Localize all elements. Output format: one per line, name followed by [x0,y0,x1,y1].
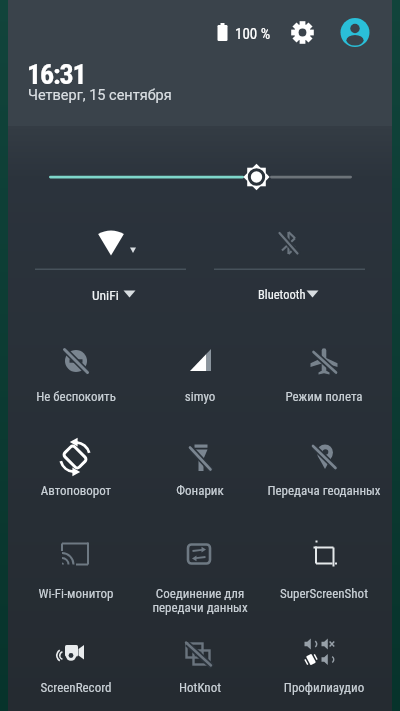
staticText: Профилиаудио [259,680,389,695]
staticText: Фонарик [135,483,265,498]
button[interactable] [262,329,386,421]
staticText: Передача геоданных [259,483,389,498]
button[interactable] [14,425,138,517]
button[interactable] [14,620,138,711]
staticText: HotKnot [135,680,265,695]
staticText: Режим полета [259,389,389,404]
staticText: Соединение для передачи данных [135,586,265,616]
button[interactable] [338,16,372,50]
button[interactable] [41,160,361,194]
button[interactable] [14,329,138,421]
button[interactable] [138,523,262,615]
button[interactable] [32,216,190,308]
staticText: UniFi [92,287,119,303]
button[interactable] [138,621,262,711]
button[interactable] [262,524,386,616]
staticText: Bluetooth [258,287,306,302]
button[interactable] [290,18,316,46]
staticText: 16:31 [27,58,86,91]
button[interactable] [14,523,138,615]
button[interactable] [262,425,386,517]
button[interactable] [138,328,262,420]
button[interactable] [210,216,368,308]
staticText: Не беспокоить [11,389,141,404]
staticText: Wi-Fi-монитор [11,586,141,601]
button[interactable] [262,620,386,711]
staticText: SuperScreenShot [259,586,389,601]
staticText: Автоповорот [11,483,141,498]
staticText: simyo [135,389,265,404]
staticText: ScreenRecord [11,680,141,695]
staticText: 100 % [235,25,271,43]
button[interactable] [138,425,262,517]
staticText: Четверг, 15 сентября [28,87,172,104]
